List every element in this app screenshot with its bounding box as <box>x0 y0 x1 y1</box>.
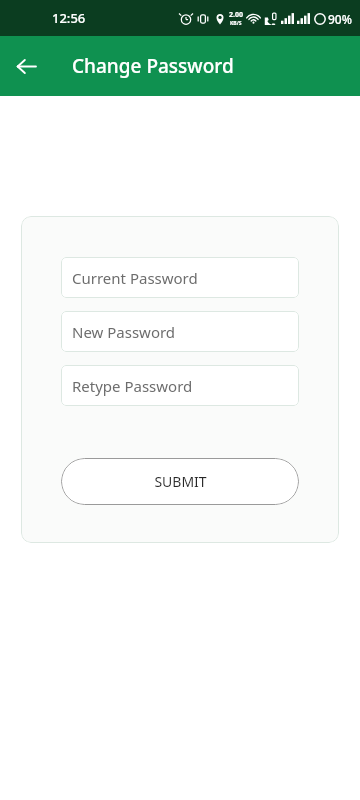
button[interactable]: Current Password <box>61 257 299 298</box>
button[interactable]: Retype Password <box>61 365 299 406</box>
button[interactable]: SUBMIT <box>61 458 299 505</box>
staticText: 90% <box>328 11 352 27</box>
button[interactable]: New Password <box>61 311 299 352</box>
staticText: 2.00 <box>229 10 243 20</box>
staticText: Retype Password <box>72 376 193 396</box>
staticText: KB/S <box>230 20 242 27</box>
button[interactable]: Back <box>8 48 44 84</box>
staticText: New Password <box>72 322 176 342</box>
staticText: Current Password <box>72 268 198 288</box>
staticText: 12:56 <box>52 9 86 27</box>
staticText: Change Password <box>72 53 234 79</box>
staticText: SUBMIT <box>154 472 207 491</box>
